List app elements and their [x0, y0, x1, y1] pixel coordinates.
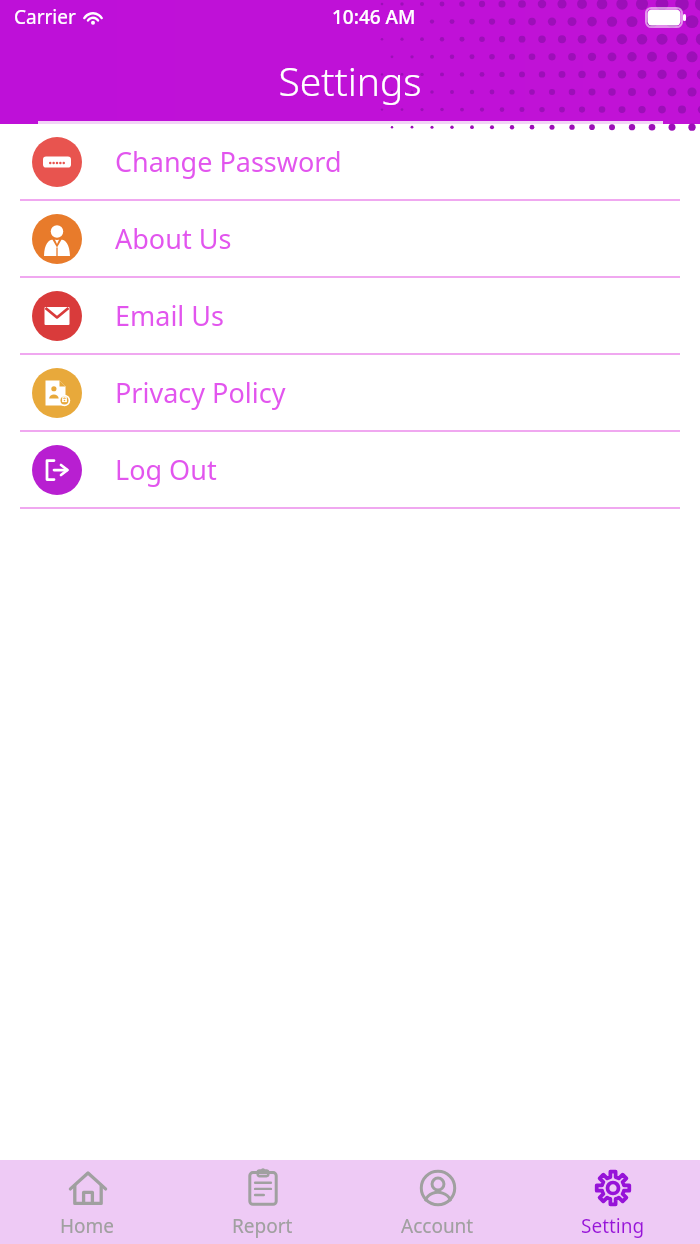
staticText: Carrier: [14, 4, 76, 30]
staticText: About Us: [115, 220, 232, 257]
staticText: 10:46 AM: [332, 4, 416, 30]
staticText: Log Out: [115, 451, 217, 488]
staticText: Report: [232, 1213, 293, 1239]
button[interactable]: Setting: [525, 1160, 700, 1244]
staticText: Email Us: [115, 297, 225, 334]
staticText: Account: [401, 1213, 474, 1239]
button[interactable]: Privacy Policy: [0, 355, 700, 432]
button[interactable]: About Us: [0, 201, 700, 278]
staticText: Privacy Policy: [115, 374, 286, 411]
staticText: Setting: [581, 1213, 645, 1239]
button[interactable]: Report: [175, 1160, 350, 1244]
staticText: Home: [60, 1213, 115, 1239]
staticText: Change Password: [115, 143, 342, 180]
staticText: Settings: [278, 54, 422, 107]
button[interactable]: Log Out: [0, 432, 700, 509]
button[interactable]: Home: [0, 1160, 175, 1244]
button[interactable]: Account: [350, 1160, 525, 1244]
button[interactable]: Email Us: [0, 278, 700, 355]
button[interactable]: Change Password: [0, 124, 700, 201]
